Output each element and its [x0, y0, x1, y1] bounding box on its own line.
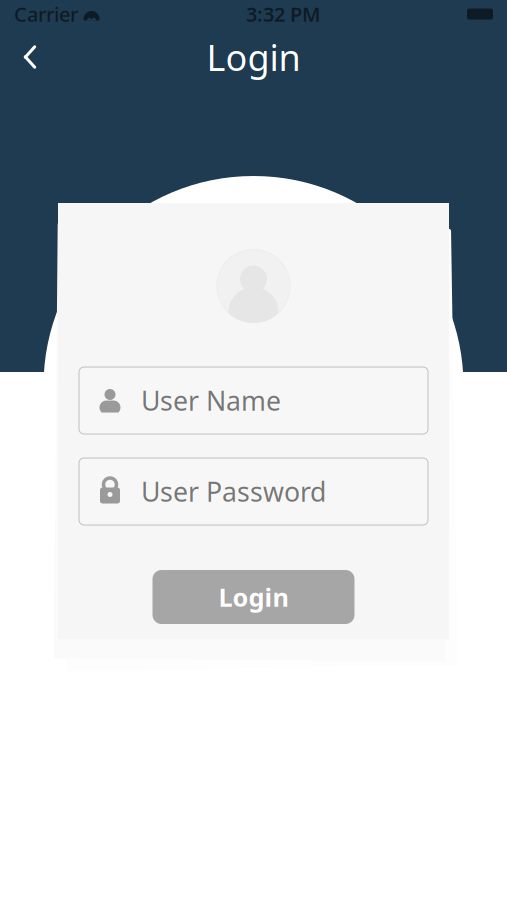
- button[interactable]: Back: [8, 35, 52, 79]
- staticText: Login: [206, 33, 300, 81]
- button[interactable]: Login: [152, 570, 354, 624]
- staticText: User Password: [141, 474, 326, 509]
- staticText: 3:32 PM: [246, 1, 321, 27]
- staticText: User Name: [141, 383, 281, 418]
- staticText: Carrier: [14, 1, 78, 27]
- button[interactable]: User Name: [79, 367, 428, 434]
- staticText: Login: [218, 580, 288, 614]
- button[interactable]: User Password: [79, 458, 428, 525]
